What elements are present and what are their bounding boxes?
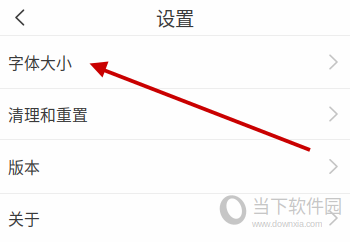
button[interactable]: 字体大小	[0, 36, 350, 88]
staticText: 清理和重置	[8, 102, 88, 125]
staticText: 版本	[8, 155, 40, 178]
staticText: 当下软件园	[252, 192, 342, 218]
staticText: 设置	[156, 3, 194, 31]
staticText: 字体大小	[8, 50, 72, 73]
staticText: www.downxia.com	[252, 219, 322, 229]
button[interactable]: Back	[0, 0, 44, 35]
button[interactable]: 版本	[0, 140, 350, 193]
staticText: 关于	[8, 206, 40, 229]
button[interactable]: 关于	[0, 194, 350, 242]
button[interactable]: 清理和重置	[0, 89, 350, 139]
